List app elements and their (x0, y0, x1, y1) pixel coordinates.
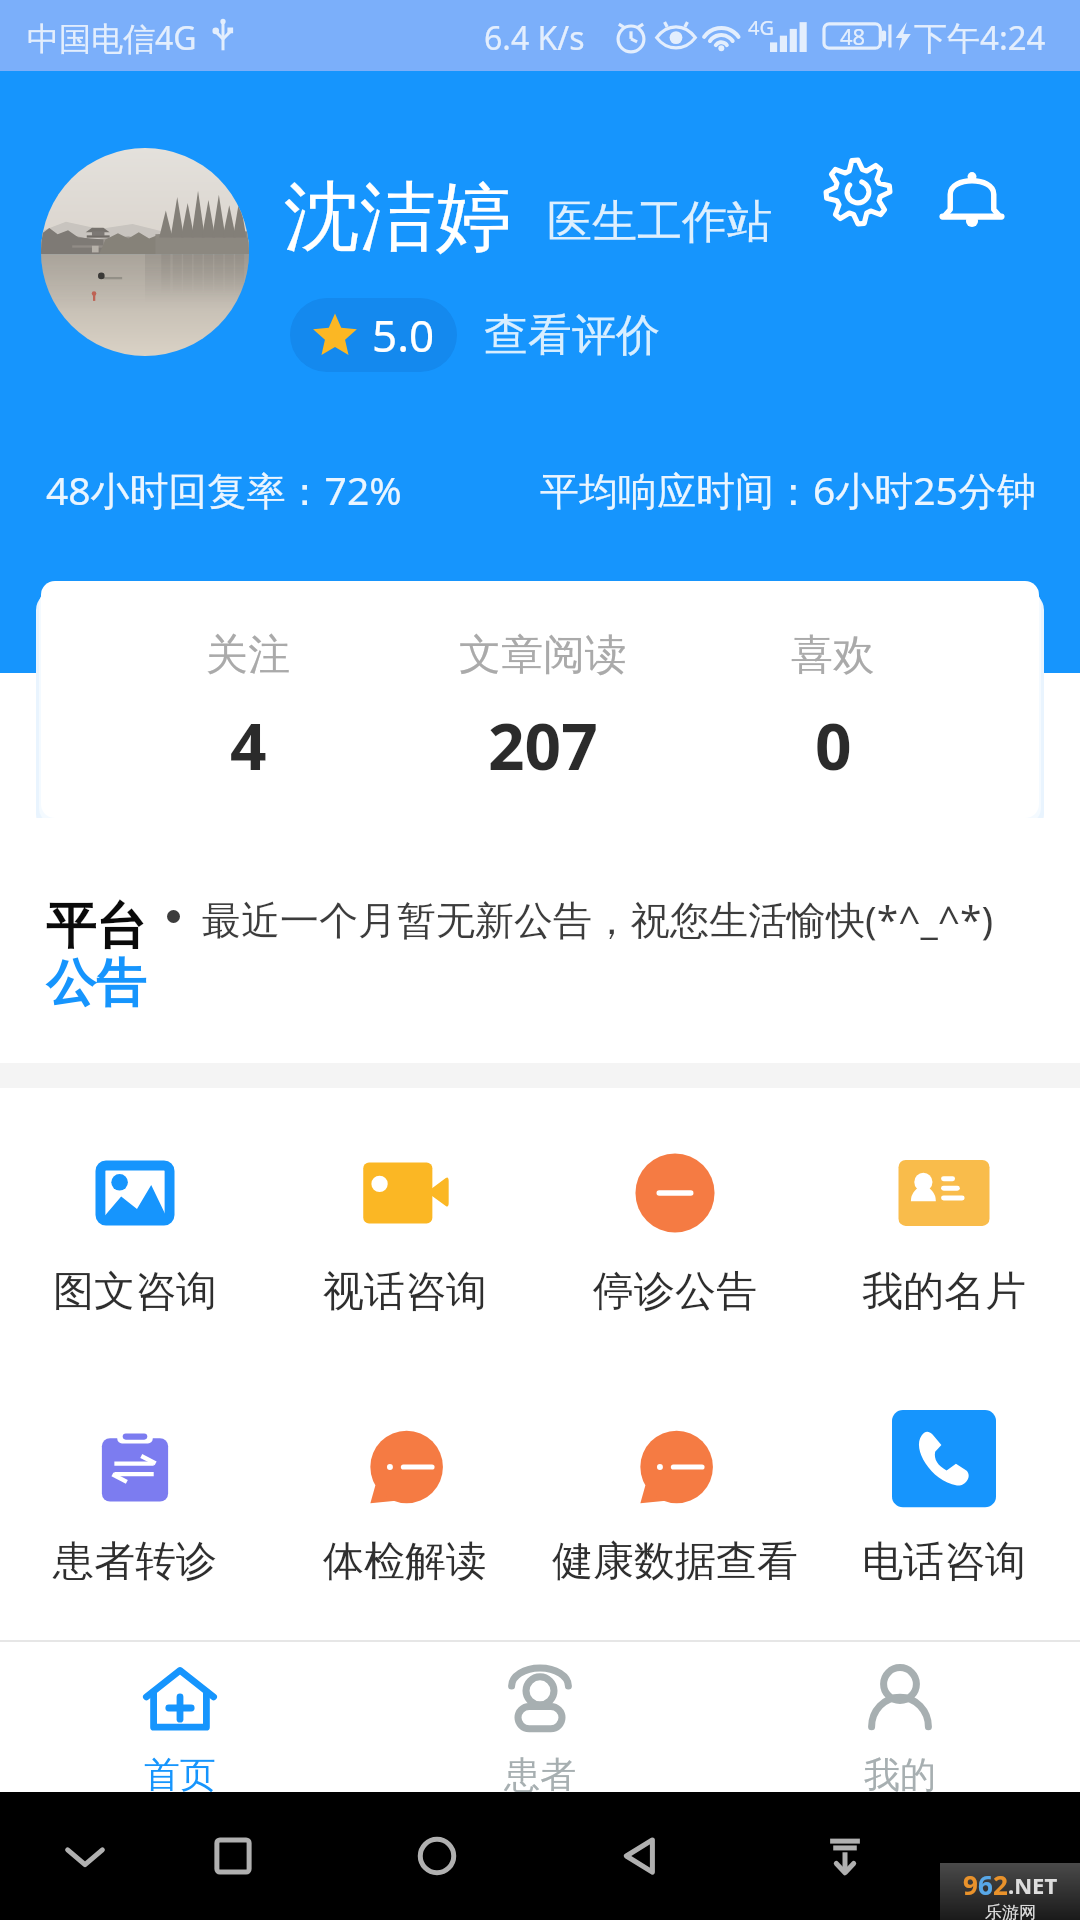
button[interactable]: 设置 (808, 142, 908, 242)
button[interactable]: 体检解读 (270, 1401, 540, 1591)
staticText: 2 (993, 1867, 1008, 1902)
button[interactable]: 图文咨询 (0, 1127, 270, 1317)
staticText: 6.4 K/s (484, 16, 585, 60)
button[interactable]: 5.0 (290, 298, 457, 372)
button[interactable]: 喜欢 (703, 581, 963, 818)
staticText: 喜欢 (791, 629, 875, 682)
staticText: 首页 (144, 1752, 216, 1797)
staticText: 体检解读 (323, 1536, 487, 1588)
button[interactable]: 我的名片 (809, 1127, 1079, 1317)
staticText: 平台 (46, 895, 146, 958)
button[interactable]: 关注 (118, 581, 378, 818)
staticText: 最近一个月暂无新公告，祝您生活愉快(*^_^*) (202, 892, 994, 945)
button[interactable]: Home (397, 1816, 477, 1896)
staticText: 关注 (206, 629, 290, 682)
button[interactable]: Hide keyboard (45, 1816, 125, 1896)
button[interactable]: Recent apps (193, 1816, 273, 1896)
staticText: 48小时回复率：72% (46, 463, 402, 516)
staticText: 健康数据查看 (552, 1536, 798, 1588)
staticText: 患者 (504, 1752, 576, 1797)
staticText: 医生工作站 (547, 194, 772, 251)
staticText: 9 (963, 1867, 978, 1902)
button[interactable]: 通知 (922, 148, 1022, 248)
staticText: 图文咨询 (53, 1266, 217, 1318)
staticText: 停诊公告 (593, 1266, 757, 1318)
button[interactable]: 我的 (720, 1642, 1080, 1792)
staticText: 4 (230, 702, 267, 789)
staticText: 中国电信4G (27, 16, 197, 60)
staticText: 48 (840, 21, 866, 51)
staticText: 查看评价 (484, 308, 660, 363)
staticText: 5.0 (372, 305, 435, 365)
button[interactable]: 平台 (0, 818, 1080, 1063)
staticText: 乐游网 (985, 1902, 1036, 1920)
button[interactable]: 停诊公告 (540, 1127, 810, 1317)
staticText: 207 (488, 702, 598, 789)
staticText: 我的名片 (862, 1266, 1026, 1318)
button[interactable]: 首页 (0, 1642, 360, 1792)
staticText: 6 (978, 1867, 993, 1902)
staticText: 沈洁婷 (284, 170, 512, 266)
button[interactable]: 视话咨询 (270, 1127, 540, 1317)
button[interactable]: Notifications (805, 1816, 885, 1896)
staticText: 文章阅读 (459, 629, 627, 682)
button[interactable]: 健康数据查看 (540, 1401, 810, 1591)
staticText: 0 (815, 702, 852, 789)
button[interactable]: 电话咨询 (809, 1394, 1079, 1584)
staticText: 公告 (46, 952, 146, 1015)
button[interactable]: 患者转诊 (0, 1401, 270, 1591)
button[interactable]: Back (600, 1816, 680, 1896)
button[interactable]: 患者 (360, 1642, 720, 1792)
button[interactable]: 查看评价 (470, 298, 674, 372)
staticText: 下午4:24 (914, 15, 1046, 60)
staticText: 患者转诊 (53, 1536, 217, 1588)
staticText: 4G (748, 14, 774, 41)
staticText: 视话咨询 (323, 1266, 487, 1318)
staticText: .NET (1008, 1870, 1058, 1900)
staticText: 平均响应时间：6小时25分钟 (540, 463, 1036, 516)
staticText: 我的 (864, 1752, 936, 1797)
button[interactable]: 文章阅读 (413, 581, 673, 818)
staticText: 电话咨询 (862, 1536, 1026, 1588)
